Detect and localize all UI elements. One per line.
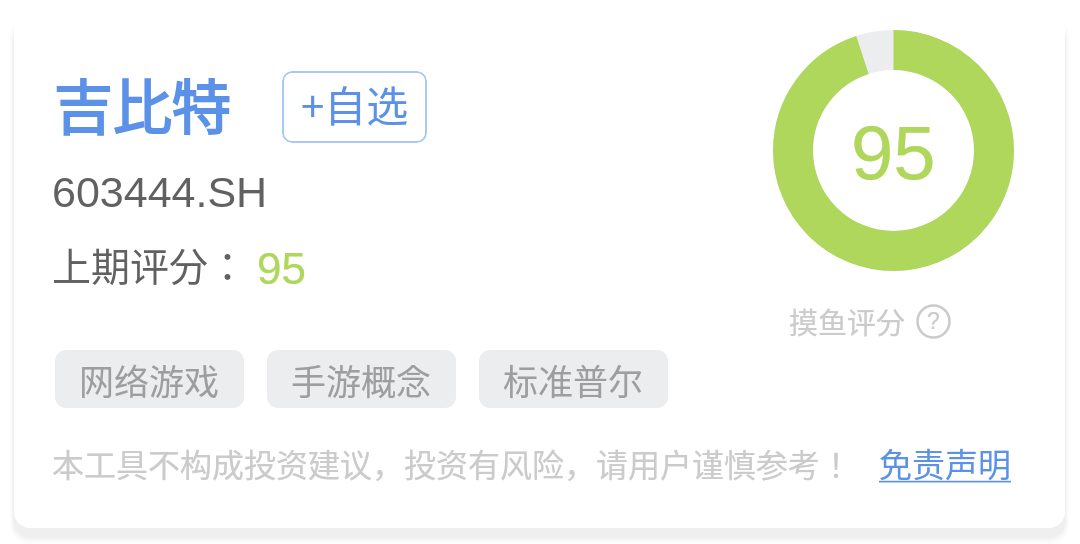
button[interactable]: 手游概念 [267,350,456,408]
staticText: 上期评分： [52,236,248,292]
button[interactable]: +自选 [282,71,427,143]
staticText: 本工具不构成投资建议，投资有风险，请用户谨慎参考！ [52,440,853,486]
staticText: 手游概念 [291,354,432,405]
staticText: 网络游戏 [79,354,220,405]
staticText: +自选 [301,73,409,134]
staticText: 95 [257,244,306,293]
button[interactable]: 免责声明 [879,439,1011,487]
staticText: 603444.SH [52,168,268,216]
button[interactable]: 标准普尔 [479,350,668,408]
staticText: 吉比特 [54,61,232,146]
button[interactable]: 网络游戏 [55,350,244,408]
staticText: 95 [851,110,936,195]
staticText: ? [927,308,940,334]
staticText: 摸鱼评分 [789,300,906,342]
staticText: 标准普尔 [503,354,644,405]
button[interactable]: Help [916,304,951,339]
